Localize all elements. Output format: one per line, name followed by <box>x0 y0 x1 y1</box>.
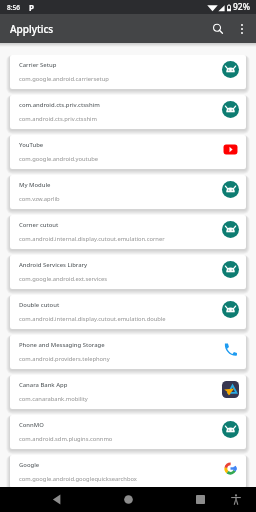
staticText: com.android.providers.telephony <box>19 355 110 363</box>
staticText: com.google.android.ext.services <box>19 275 108 283</box>
staticText: Phone and Messaging Storage <box>19 341 105 349</box>
staticText: Applytics <box>10 22 54 36</box>
staticText: com.android.cts.priv.ctsshim <box>19 115 97 123</box>
button[interactable]: YouTube <box>10 135 246 169</box>
staticText: com.android.sdm.plugins.connmo <box>19 435 113 443</box>
button[interactable]: Android Services Library <box>10 255 246 289</box>
staticText: Carrier Setup <box>19 61 57 69</box>
button[interactable]: Canara Bank App <box>10 375 246 409</box>
staticText: Google <box>19 461 40 469</box>
staticText: com.google.android.googlequicksearchbox <box>19 475 137 483</box>
button[interactable]: Home <box>116 487 140 512</box>
button[interactable]: Phone and Messaging Storage <box>10 335 246 369</box>
button[interactable]: Back <box>44 487 68 512</box>
staticText: ConnMO <box>19 421 44 429</box>
button[interactable]: com.android.cts.priv.ctsshim <box>10 95 246 129</box>
button[interactable]: Carrier Setup <box>10 55 246 89</box>
button[interactable]: Recent apps <box>188 487 212 512</box>
button[interactable]: More options <box>231 18 253 40</box>
staticText: 8:56 <box>7 3 20 12</box>
staticText: com.google.android.carriersetup <box>19 75 109 83</box>
staticText: com.android.cts.priv.ctsshim <box>19 101 100 109</box>
staticText: My Module <box>19 181 51 189</box>
staticText: com.android.internal.display.cutout.emul… <box>19 315 166 323</box>
staticText: Double cutout <box>19 301 60 309</box>
staticText: com.google.android.youtube <box>19 155 99 163</box>
button[interactable]: Double cutout <box>10 295 246 329</box>
staticText: com.android.internal.display.cutout.emul… <box>19 235 165 243</box>
button[interactable]: ConnMO <box>10 415 246 449</box>
button[interactable]: Corner cutout <box>10 215 246 249</box>
staticText: com.vzw.aprlib <box>19 195 60 203</box>
staticText: 92% <box>233 1 250 13</box>
staticText: Corner cutout <box>19 221 59 229</box>
button[interactable]: Google <box>10 455 246 488</box>
staticText: Canara Bank App <box>19 381 68 389</box>
button[interactable]: Search <box>205 16 231 42</box>
button[interactable]: My Module <box>10 175 246 209</box>
staticText: com.canarabank.mobility <box>19 395 88 403</box>
button[interactable]: Accessibility <box>224 487 248 512</box>
staticText: P <box>29 2 34 13</box>
staticText: Android Services Library <box>19 261 88 269</box>
staticText: YouTube <box>19 141 44 149</box>
